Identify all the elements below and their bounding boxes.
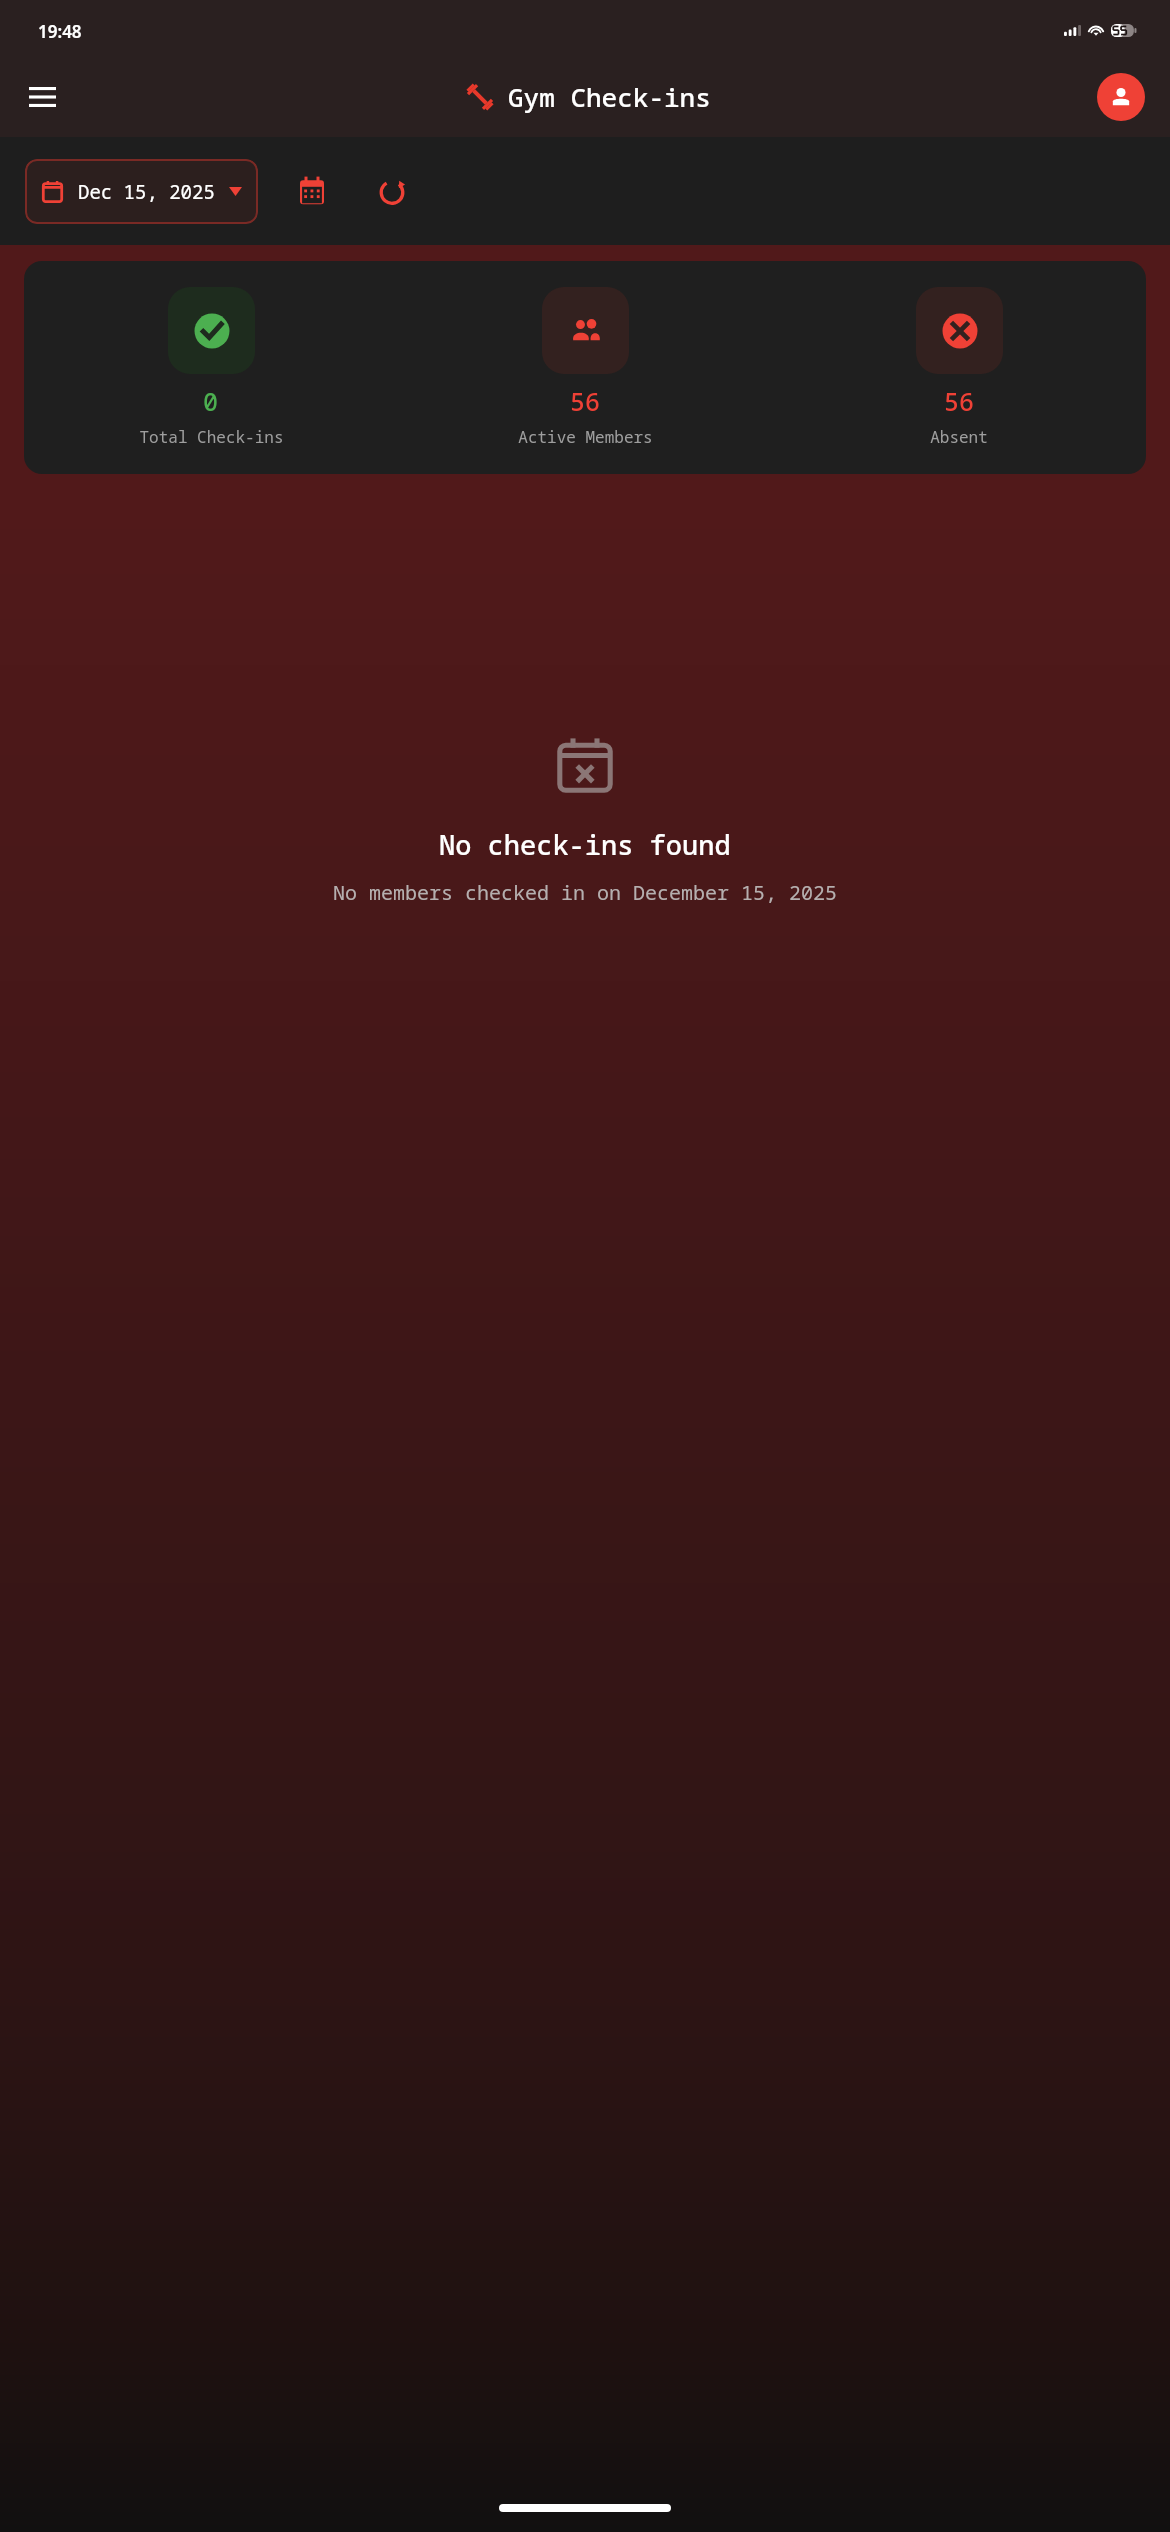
staticText: Dec 15, 2025 [78, 179, 215, 205]
button[interactable]: Profile [1090, 66, 1152, 128]
button[interactable]: 56 [398, 287, 772, 448]
button[interactable]: Refresh [364, 163, 420, 219]
button[interactable]: Dec 15, 2025 [25, 159, 258, 224]
button[interactable]: Pick month [284, 163, 340, 219]
staticText: 0 [203, 384, 219, 418]
button[interactable]: 0 [24, 287, 398, 448]
staticText: No members checked in on December 15, 20… [333, 879, 837, 906]
staticText: 56 [944, 384, 975, 418]
staticText: 56 [570, 384, 601, 418]
staticText: Total Check-ins [139, 426, 284, 448]
staticText: Active Members [518, 426, 653, 448]
button[interactable]: 56 [772, 287, 1146, 448]
staticText: No check-ins found [439, 826, 731, 863]
staticText: 19:48 [38, 20, 82, 43]
button[interactable]: Menu [14, 69, 70, 125]
staticText: Absent [930, 426, 988, 448]
staticText: Gym Check-ins [508, 79, 711, 114]
